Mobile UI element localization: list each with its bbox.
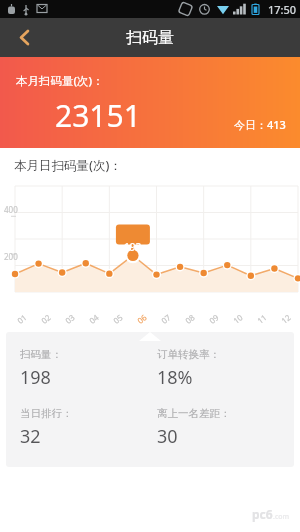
staticText: 11 [255,311,269,326]
staticText: 17:50 [268,2,297,17]
staticText: 12 [279,311,293,326]
staticText: .com [273,512,290,522]
staticText: 今日：413 [234,117,286,132]
staticText: 193 [124,240,142,254]
staticText: 扫码量： [20,348,62,361]
staticText: 32 [20,424,41,449]
staticText: 400 [4,204,18,215]
staticText: 05 [111,311,125,326]
button[interactable]: 本月扫码量(次)： [0,57,300,148]
staticText: 扫码量 [126,28,174,48]
staticText: 30 [157,424,178,449]
staticText: 07 [159,311,173,326]
staticText: 本月扫码量(次)： [16,73,104,89]
staticText: 离上一名差距： [157,407,231,420]
staticText: 01 [15,311,29,326]
staticText: 06 [135,311,149,326]
staticText: 当日排行： [20,407,73,420]
button[interactable]: 400 [0,180,300,332]
staticText: 200 [4,251,18,262]
staticText: 03 [63,311,77,326]
staticText: 订单转换率： [157,348,220,361]
staticText: 198 [20,365,51,390]
staticText: 10 [231,311,245,326]
staticText: 23151 [55,95,141,136]
button[interactable]: Back [0,18,48,57]
button[interactable]: 扫码量： [6,332,294,467]
staticText: 04 [87,311,101,326]
staticText: 08 [183,311,197,326]
staticText: 09 [207,311,221,326]
staticText: 18% [157,365,193,390]
staticText: 02 [39,311,53,326]
staticText: 本月日扫码量(次)： [14,157,122,174]
staticText: pc6 [252,506,273,522]
